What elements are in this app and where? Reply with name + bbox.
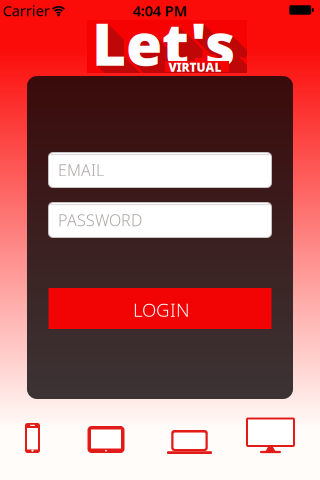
staticText: Carrier [2, 1, 49, 20]
staticText: Let's [100, 12, 243, 90]
staticText: Let's [93, 5, 236, 82]
staticText: Let's [93, 5, 236, 83]
staticText: Let's [92, 4, 235, 82]
staticText: Let's [94, 6, 237, 84]
staticText: Let's [102, 14, 245, 92]
staticText: Let's [97, 9, 240, 87]
staticText: Let's [102, 14, 245, 91]
button[interactable]: LOGIN [48, 288, 271, 329]
staticText: 4:04 PM [132, 1, 187, 20]
staticText: Let's [97, 9, 240, 87]
staticText: Let's [107, 19, 250, 97]
staticText: Let's [108, 20, 251, 97]
staticText: Let's [100, 12, 243, 90]
button[interactable]: Phone [25, 423, 40, 453]
staticText: VIRTUAL [170, 61, 223, 77]
staticText: Let's [105, 17, 248, 94]
staticText: VIRTUAL [171, 62, 224, 78]
staticText: Let's [104, 16, 247, 94]
staticText: Let's [99, 11, 242, 88]
staticText: EMAIL [58, 159, 104, 181]
staticText: Let's [99, 11, 242, 89]
staticText: Let's [106, 18, 249, 96]
staticText: Let's [103, 15, 246, 93]
staticText: LOGIN [133, 297, 190, 322]
staticText: Let's [103, 15, 246, 93]
button[interactable]: Desktop [246, 417, 295, 453]
staticText: Let's [98, 10, 241, 88]
staticText: Let's [95, 7, 238, 85]
staticText: Let's [101, 13, 244, 91]
staticText: Let's [105, 17, 248, 95]
staticText: Let's [94, 6, 237, 84]
staticText: Let's [106, 18, 249, 96]
button[interactable]: EMAIL [48, 152, 272, 188]
staticText: VIRTUAL [168, 59, 221, 75]
staticText: PASSWORD [58, 209, 142, 231]
staticText: Let's [96, 8, 239, 86]
button[interactable]: PASSWORD [48, 202, 272, 238]
staticText: Let's [96, 8, 239, 85]
button[interactable]: Laptop [167, 430, 212, 454]
staticText: VIRTUAL [169, 60, 222, 76]
button[interactable]: Tablet [87, 426, 124, 453]
